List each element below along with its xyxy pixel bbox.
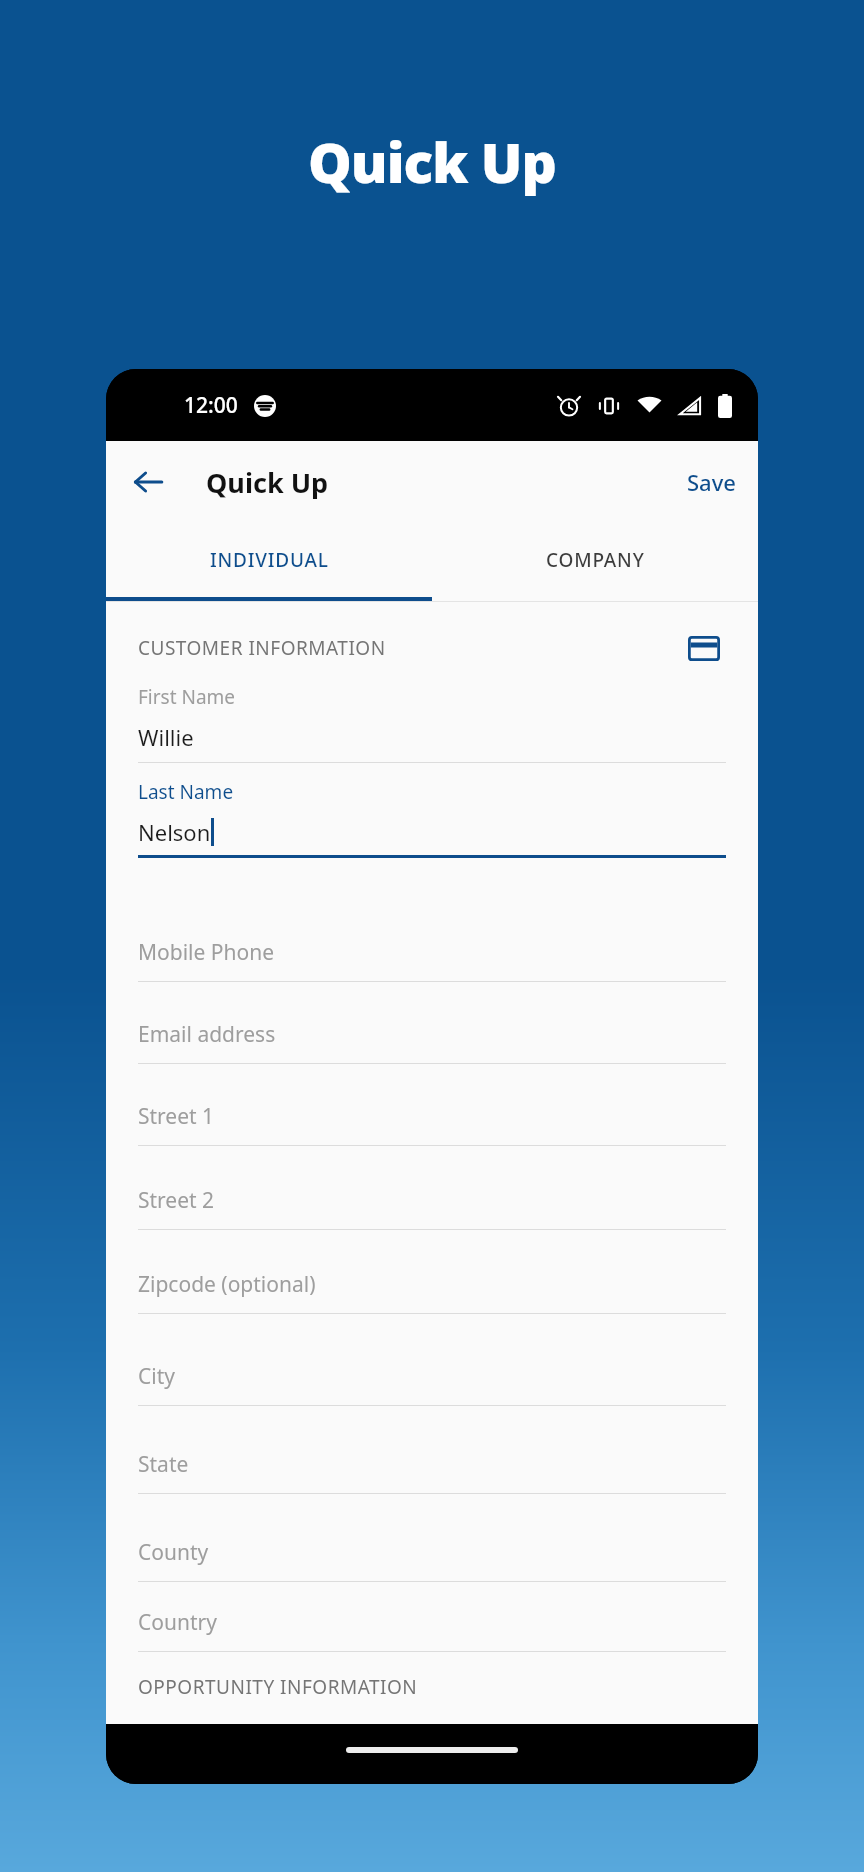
button[interactable]: Zipcode (optional) xyxy=(138,1270,726,1314)
button[interactable]: Scan card xyxy=(682,626,726,670)
staticText: Email address xyxy=(138,1020,276,1049)
staticText: 12:00 xyxy=(184,391,238,420)
staticText: COMPANY xyxy=(546,547,645,573)
staticText: INDIVIDUAL xyxy=(210,547,329,573)
staticText: Mobile Phone xyxy=(138,938,275,967)
staticText: Save xyxy=(687,467,736,497)
staticText: Street 2 xyxy=(138,1186,215,1215)
button[interactable]: Mobile Phone xyxy=(138,938,726,982)
staticText: Nelson xyxy=(138,817,211,847)
button[interactable]: INDIVIDUAL xyxy=(106,523,432,597)
staticText: Quick Up xyxy=(308,124,556,199)
button[interactable]: Back xyxy=(120,454,176,510)
staticText: City xyxy=(138,1362,175,1391)
staticText: State xyxy=(138,1450,189,1479)
button[interactable]: Email address xyxy=(138,1020,726,1064)
staticText: OPPORTUNITY INFORMATION xyxy=(138,1674,418,1700)
staticText: Country xyxy=(138,1608,217,1637)
button[interactable]: Street 1 xyxy=(138,1102,726,1146)
button[interactable]: County xyxy=(138,1538,726,1582)
staticText: Last Name xyxy=(138,779,234,805)
button[interactable]: Save xyxy=(665,451,758,513)
button[interactable]: Last Name xyxy=(138,779,726,858)
staticText: First Name xyxy=(138,684,236,710)
button[interactable]: State xyxy=(138,1450,726,1494)
staticText: Quick Up xyxy=(206,464,329,501)
button[interactable]: City xyxy=(138,1362,726,1406)
button[interactable]: Country xyxy=(138,1608,726,1652)
staticText: Willie xyxy=(138,722,194,752)
staticText: Street 1 xyxy=(138,1102,215,1131)
staticText: Zipcode (optional) xyxy=(138,1270,316,1299)
button[interactable]: COMPANY xyxy=(432,523,758,597)
staticText: County xyxy=(138,1538,209,1567)
button[interactable]: Street 2 xyxy=(138,1186,726,1230)
button[interactable]: First Name xyxy=(138,684,726,763)
staticText: CUSTOMER INFORMATION xyxy=(138,635,386,661)
